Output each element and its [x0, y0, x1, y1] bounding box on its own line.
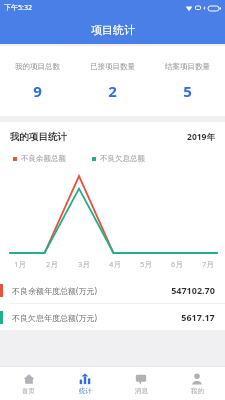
- staticText: 9: [33, 81, 42, 101]
- button[interactable]: 统计: [57, 367, 113, 400]
- staticText: 7月: [202, 259, 214, 269]
- button[interactable]: 已接项目数量: [75, 46, 150, 116]
- button[interactable]: 消息: [113, 367, 169, 400]
- staticText: 项目统计: [91, 23, 135, 37]
- staticText: 不良欠息年度总额(万元): [12, 312, 97, 323]
- button[interactable]: 首页: [0, 367, 57, 400]
- button[interactable]: 不良欠息年度总额(万元): [0, 304, 225, 330]
- button[interactable]: 我的项目总数: [0, 46, 75, 116]
- staticText: 4月: [109, 259, 121, 269]
- button[interactable]: 我的: [169, 367, 225, 400]
- staticText: 不良余额年度总额(万元): [12, 285, 97, 296]
- staticText: 3月: [78, 259, 90, 269]
- staticText: 1月: [14, 259, 26, 269]
- staticText: 统计: [79, 387, 92, 395]
- staticText: 5: [183, 81, 192, 101]
- staticText: 下午5:32: [4, 3, 32, 13]
- staticText: 首页: [22, 387, 35, 395]
- staticText: 547102.70: [171, 284, 215, 296]
- staticText: 我的: [191, 387, 204, 395]
- staticText: 我的项目统计: [10, 131, 67, 143]
- staticText: 5617.17: [181, 311, 215, 323]
- button[interactable]: 结案项目数量: [150, 46, 225, 116]
- staticText: 2月: [46, 259, 58, 269]
- staticText: 不良余额总额: [21, 154, 66, 163]
- staticText: 结案项目数量: [165, 62, 210, 71]
- staticText: 2: [108, 81, 117, 101]
- staticText: 6月: [171, 259, 183, 269]
- staticText: 不良欠息总额: [100, 154, 145, 163]
- staticText: 5月: [140, 259, 152, 269]
- button[interactable]: 不良余额年度总额(万元): [0, 277, 225, 303]
- staticText: 2019年: [187, 131, 215, 143]
- staticText: 我的项目总数: [15, 62, 60, 71]
- staticText: 消息: [135, 387, 148, 395]
- staticText: 已接项目数量: [90, 62, 135, 71]
